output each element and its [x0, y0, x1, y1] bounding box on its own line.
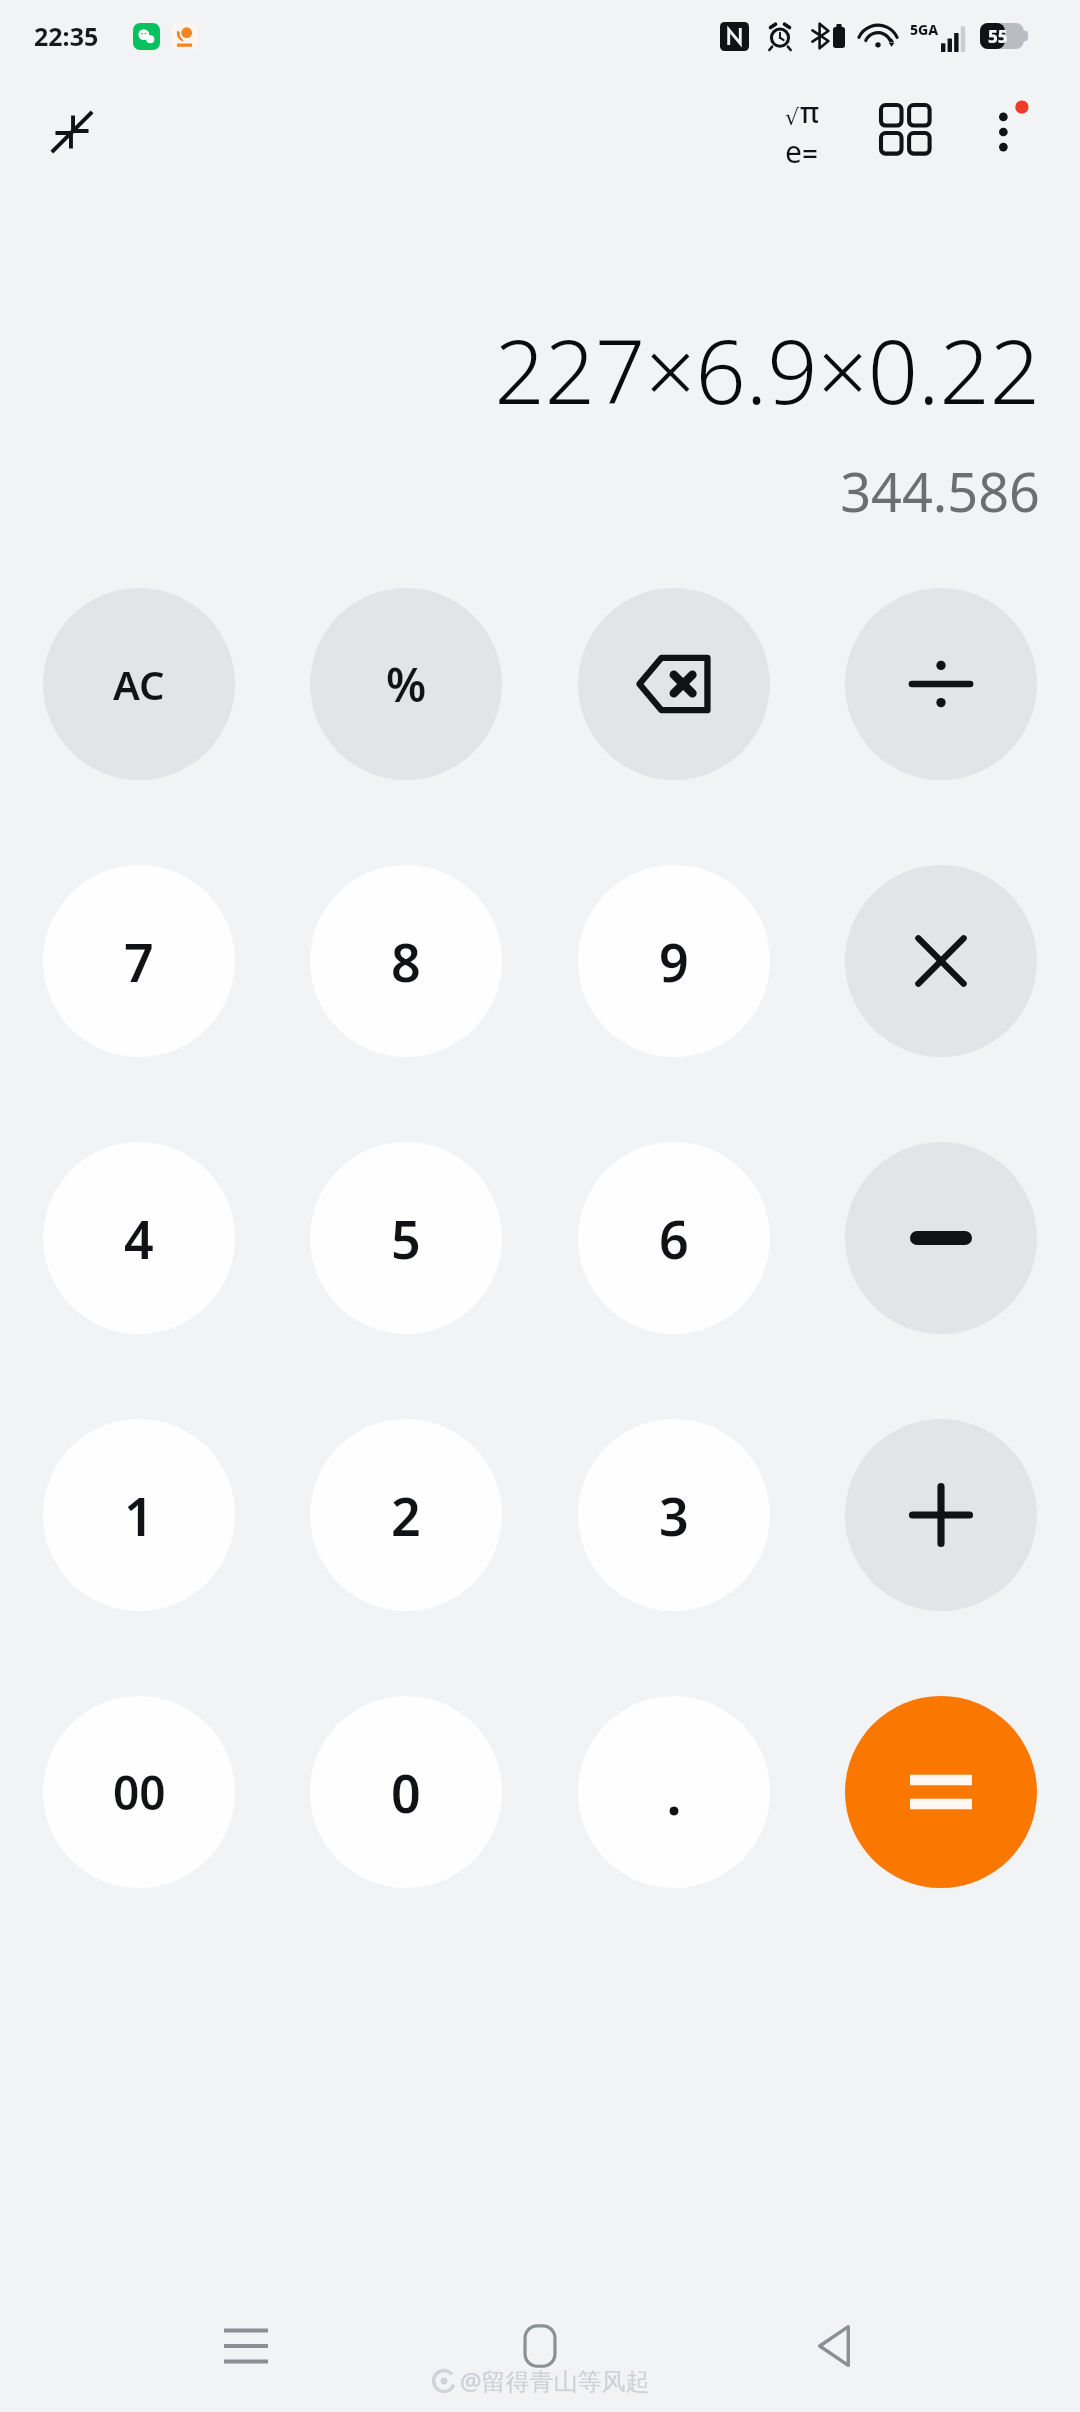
staticText: 0 [391, 1757, 421, 1828]
button[interactable]: 9 [578, 865, 770, 1057]
staticText: @留得青山等风起 [460, 2364, 650, 2397]
staticText: 8 [391, 926, 421, 997]
staticText: 7 [124, 926, 154, 997]
staticText: 6 [659, 1203, 689, 1274]
button[interactable]: 00 [43, 1696, 235, 1888]
button[interactable]: 3 [578, 1419, 770, 1611]
button[interactable]: 0 [310, 1696, 502, 1888]
staticText: . [666, 1753, 683, 1832]
button[interactable]: 6 [578, 1142, 770, 1334]
button[interactable]: History [860, 84, 956, 180]
staticText: 5 [391, 1203, 421, 1274]
staticText: 4 [124, 1203, 154, 1274]
button[interactable]: 7 [43, 865, 235, 1057]
staticText: 22:35 [34, 19, 99, 53]
button[interactable]: 5 [310, 1142, 502, 1334]
staticText: 2 [391, 1480, 421, 1551]
button[interactable]: Scientific mode [754, 84, 850, 180]
staticText: 55 [988, 25, 1008, 48]
staticText: √ [785, 105, 800, 131]
staticText: π [800, 93, 820, 131]
staticText: 5GA [910, 20, 939, 39]
button[interactable]: 1 [43, 1419, 235, 1611]
button[interactable]: Equals [845, 1696, 1037, 1888]
staticText: 00 [113, 1761, 166, 1824]
staticText: 9 [659, 926, 689, 997]
button[interactable]: Backspace [578, 588, 770, 780]
staticText: % [386, 653, 427, 716]
staticText: AC [113, 657, 165, 711]
staticText: 344.586 [840, 454, 1040, 528]
button[interactable]: % [310, 588, 502, 780]
staticText: 3 [659, 1480, 689, 1551]
button[interactable]: 8 [310, 865, 502, 1057]
button[interactable]: Plus [845, 1419, 1037, 1611]
staticText: 1 [124, 1480, 154, 1551]
button[interactable]: Recents [198, 2298, 294, 2394]
button[interactable]: Home [492, 2298, 588, 2394]
button[interactable]: . [578, 1696, 770, 1888]
staticText: = [802, 134, 819, 172]
button[interactable]: Divide [845, 588, 1037, 780]
button[interactable]: Collapse [28, 88, 116, 176]
staticText: 227×6.9×0.22 [494, 310, 1040, 430]
button[interactable]: 2 [310, 1419, 502, 1611]
button[interactable]: Minus [845, 1142, 1037, 1334]
button[interactable]: 4 [43, 1142, 235, 1334]
button[interactable]: Multiply [845, 865, 1037, 1057]
button[interactable]: More options [960, 84, 1056, 180]
staticText: e [785, 131, 802, 172]
button[interactable]: Back [786, 2298, 882, 2394]
button[interactable]: AC [43, 588, 235, 780]
